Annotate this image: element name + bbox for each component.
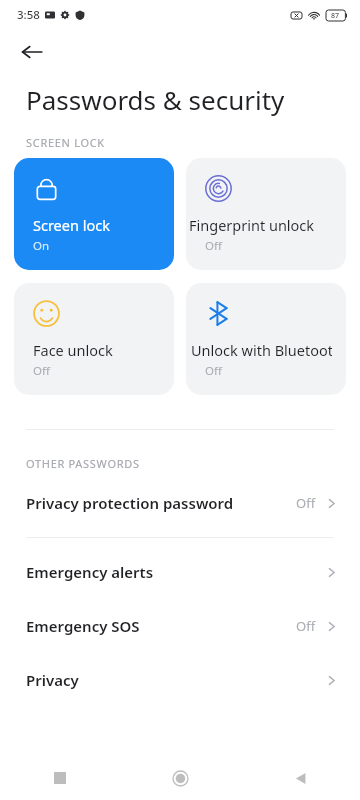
staticText: 87: [331, 11, 340, 21]
staticText: OTHER PASSWORDS: [26, 456, 140, 471]
button[interactable]: Recents: [0, 756, 120, 800]
staticText: Face unlock: [33, 340, 113, 360]
staticText: Passwords & security: [26, 82, 285, 117]
staticText: Privacy: [26, 670, 325, 690]
staticText: Off: [296, 494, 316, 512]
staticText: 3:58: [17, 7, 40, 23]
staticText: Screen lock: [33, 215, 110, 235]
button[interactable]: Back: [12, 32, 52, 72]
staticText: Unlock with Bluetooth: [191, 340, 332, 360]
button[interactable]: Emergency alerts: [0, 552, 360, 592]
button[interactable]: Emergency SOS: [0, 606, 360, 646]
staticText: Fingerprint unlock: [189, 215, 315, 235]
staticText: Off: [205, 363, 222, 379]
staticText: SCREEN LOCK: [26, 135, 105, 150]
button[interactable]: Fingerprint unlock: [186, 158, 346, 270]
button[interactable]: Back: [240, 756, 360, 800]
staticText: Off: [296, 617, 316, 635]
staticText: Privacy protection password: [26, 493, 296, 513]
button[interactable]: Privacy protection password: [0, 483, 360, 523]
staticText: Off: [33, 363, 50, 379]
staticText: Emergency SOS: [26, 616, 296, 636]
button[interactable]: Screen lock: [14, 158, 174, 270]
button[interactable]: Face unlock: [14, 283, 174, 395]
button[interactable]: Home: [120, 756, 240, 800]
button[interactable]: Privacy: [0, 660, 360, 700]
staticText: Emergency alerts: [26, 562, 325, 582]
button[interactable]: Unlock with Bluetooth: [186, 283, 346, 395]
staticText: On: [33, 238, 50, 254]
staticText: Off: [205, 238, 222, 254]
